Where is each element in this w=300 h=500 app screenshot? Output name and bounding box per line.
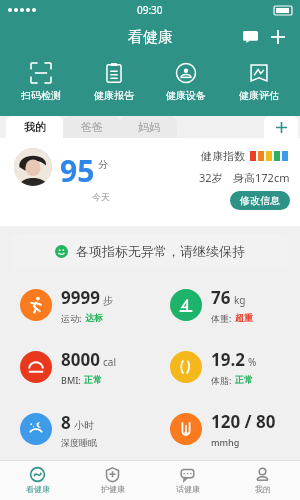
button[interactable]: 护健康 (75, 461, 150, 500)
button[interactable]: Blood pressure (150, 398, 300, 460)
button[interactable]: 健康评估 (227, 60, 291, 104)
staticText: 76 (211, 286, 231, 309)
staticText: kg (234, 293, 246, 307)
staticText: 健康报告 (94, 89, 134, 102)
button[interactable]: BMI (0, 336, 150, 398)
button[interactable]: 我的 (225, 461, 300, 500)
other: Body fat (170, 351, 202, 383)
button[interactable]: 各项指标无异常，请继续保持 (12, 234, 288, 268)
staticText: 健康评估 (239, 89, 279, 102)
staticText: 身高172cm (233, 170, 290, 185)
button[interactable]: 看健康 (0, 461, 75, 500)
button[interactable]: Steps (0, 274, 150, 336)
other: Steps (20, 289, 52, 321)
staticText: mmhg (211, 436, 240, 448)
staticText: 我的 (24, 120, 46, 134)
staticText: 95 (60, 150, 95, 191)
button[interactable]: 我的 (6, 116, 63, 138)
button[interactable]: Messages (236, 23, 264, 51)
staticText: 120 / 80 (211, 410, 276, 433)
staticText: 看健康 (26, 484, 50, 494)
button[interactable]: 妈妈 (120, 116, 177, 138)
other: BMI (20, 351, 52, 383)
staticText: 9999 (61, 286, 100, 309)
staticText: 深度睡眠 (61, 437, 97, 448)
staticText: cal (103, 355, 116, 369)
staticText: 小时 (74, 419, 94, 432)
button[interactable]: 修改信息 (230, 191, 290, 210)
staticText: 正常 (84, 374, 102, 385)
staticText: 19.2 (211, 348, 245, 371)
staticText: 分 (98, 158, 108, 171)
staticText: BMI: (61, 374, 81, 386)
staticText: 正常 (235, 374, 253, 385)
button[interactable]: Sleep (0, 398, 150, 460)
staticText: 今天 (92, 191, 110, 202)
staticText: 达标 (85, 312, 103, 323)
staticText: 体重: (211, 312, 232, 324)
staticText: 09:30 (137, 3, 163, 17)
staticText: 健康设备 (166, 89, 206, 102)
staticText: 话健康 (176, 484, 200, 494)
button[interactable]: Avatar (14, 148, 52, 186)
other: Blood pressure (170, 413, 202, 445)
staticText: 32岁 (199, 170, 223, 185)
staticText: 8 (61, 411, 71, 434)
staticText: 各项指标无异常，请继续保持 (76, 243, 245, 259)
staticText: 运动: (61, 312, 82, 324)
staticText: 扫码检测 (21, 89, 61, 102)
button[interactable]: 话健康 (150, 461, 225, 500)
staticText: 看健康 (128, 28, 173, 47)
button[interactable]: 健康设备 (154, 60, 218, 104)
staticText: 8000 (61, 348, 100, 371)
staticText: 护健康 (101, 484, 125, 494)
staticText: 我的 (255, 484, 271, 494)
staticText: 妈妈 (138, 120, 160, 134)
button[interactable]: Add member (264, 116, 298, 138)
button[interactable]: 健康报告 (82, 60, 146, 104)
button[interactable]: Body fat (150, 336, 300, 398)
staticText: 修改信息 (240, 194, 280, 207)
staticText: 体脂: (211, 374, 232, 386)
other: Weight (170, 289, 202, 321)
button[interactable]: Weight (150, 274, 300, 336)
button[interactable]: 扫码检测 (9, 60, 73, 104)
other: Sleep (20, 413, 52, 445)
button[interactable]: 爸爸 (63, 116, 120, 138)
staticText: 步 (103, 294, 113, 307)
staticText: % (248, 355, 257, 369)
staticText: 超重 (235, 312, 253, 323)
button[interactable]: Add (264, 23, 292, 51)
staticText: 爸爸 (81, 120, 103, 134)
staticText: 健康指数 (201, 149, 245, 163)
